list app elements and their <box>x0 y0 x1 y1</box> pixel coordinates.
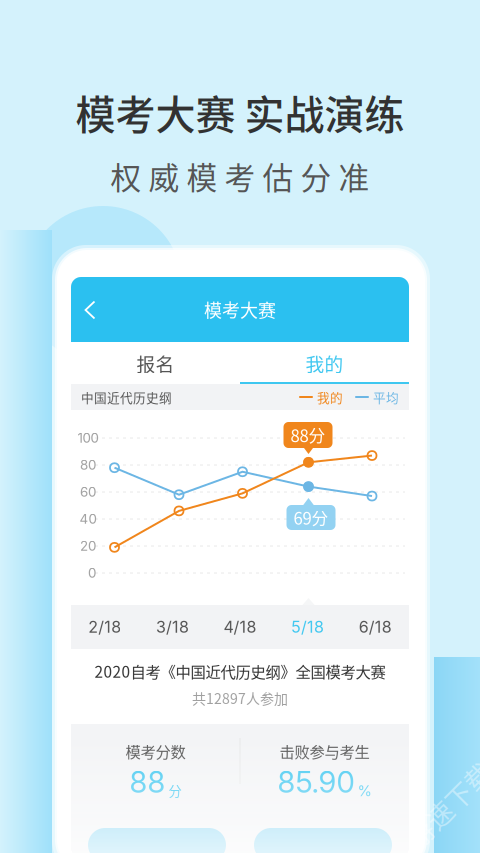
staticText: 平均 <box>373 388 399 406</box>
button[interactable]: 我的 <box>240 342 409 384</box>
staticText: 100 <box>77 430 98 446</box>
staticText: 击败参与考生 <box>279 740 369 762</box>
staticText: 中国近代历史纲 <box>81 388 172 406</box>
button[interactable]: 2/18 <box>71 605 139 649</box>
button[interactable]: 5/18 <box>274 605 341 649</box>
staticText: 4/18 <box>223 617 256 637</box>
button[interactable]: 3/18 <box>139 605 206 649</box>
button[interactable]: 6/18 <box>341 605 409 649</box>
staticText: 权 威 模 考 估 分 准 <box>110 154 369 198</box>
staticText: 我的 <box>305 349 343 376</box>
staticText: 报名 <box>136 349 174 376</box>
staticText: 共12897人参加 <box>192 688 288 708</box>
staticText: 6/18 <box>359 617 392 637</box>
staticText: 模考大赛 实战演练 <box>75 83 404 141</box>
staticText: 80 <box>80 457 96 473</box>
staticText: 5/18 <box>291 617 324 637</box>
button[interactable]: 4/18 <box>206 605 274 649</box>
staticText: 40 <box>79 511 96 527</box>
staticText: 88 <box>129 764 165 800</box>
staticText: 0 <box>88 565 96 581</box>
button[interactable]: Back <box>75 295 105 325</box>
staticText: % <box>357 782 371 800</box>
staticText: 模考大赛 <box>204 296 276 323</box>
staticText: 2020自考《中国近代历史纲》全国模考大赛 <box>94 660 385 682</box>
button[interactable]: 立即报名 <box>254 828 392 853</box>
staticText: 游速下载网 <box>390 776 480 814</box>
staticText: 85.90 <box>277 764 354 800</box>
staticText: 20 <box>80 538 96 554</box>
button[interactable]: 查看详情 <box>88 828 226 853</box>
staticText: 3/18 <box>156 617 189 637</box>
staticText: 分 <box>168 780 181 800</box>
staticText: 模考分数 <box>125 740 185 762</box>
staticText: 88分 <box>290 423 325 447</box>
staticText: 60 <box>80 484 96 500</box>
staticText: 我的 <box>317 388 343 406</box>
staticText: 2/18 <box>88 617 121 637</box>
button[interactable]: 报名 <box>71 342 240 384</box>
staticText: 69分 <box>293 505 328 529</box>
